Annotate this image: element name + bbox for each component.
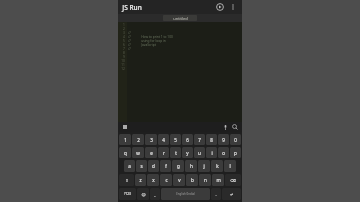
button[interactable]: Shift (119, 174, 134, 186)
staticText: c (165, 177, 168, 183)
button[interactable]: q (119, 147, 131, 158)
staticText: English (India) (176, 192, 195, 196)
staticText: 2 (123, 27, 125, 31)
staticText: g (177, 163, 180, 169)
staticText: 10 (121, 59, 125, 63)
staticText: 6 (123, 43, 125, 47)
button[interactable]: j (198, 160, 210, 172)
button[interactable]: Clipboard (121, 123, 129, 131)
staticText: i (211, 150, 213, 156)
staticText: ⇧ (125, 178, 129, 183)
button[interactable]: , (150, 188, 160, 200)
button[interactable]: i (206, 147, 217, 158)
button[interactable]: u (194, 147, 205, 158)
staticText: 9 (222, 137, 225, 143)
button[interactable]: Backspace (225, 174, 241, 186)
button[interactable]: 0 (230, 134, 241, 145)
staticText: // (128, 43, 131, 47)
button[interactable]: l (224, 160, 236, 172)
button[interactable]: 2 (132, 134, 144, 145)
button[interactable]: a (124, 160, 135, 172)
staticText: // (128, 39, 131, 43)
button[interactable]: 9 (218, 134, 229, 145)
button[interactable]: x (147, 174, 159, 186)
staticText: ⌫ (230, 178, 236, 183)
staticText: 5 (123, 39, 125, 43)
button[interactable]: h (185, 160, 197, 172)
staticText: o (222, 150, 225, 156)
button[interactable]: t (170, 147, 181, 158)
staticText: x (152, 177, 155, 183)
staticText: ?123 (124, 192, 131, 196)
staticText: , (154, 192, 156, 197)
staticText: h (190, 163, 193, 169)
staticText: 3 (123, 31, 125, 35)
staticText: // (128, 35, 131, 39)
staticText: m (216, 177, 221, 183)
button[interactable]: y (182, 147, 193, 158)
button[interactable]: . (211, 188, 221, 200)
staticText: JavaScript (141, 43, 156, 47)
staticText: 1 (124, 137, 127, 143)
staticText: 2 (137, 137, 140, 143)
staticText: w (136, 150, 140, 156)
staticText: v (178, 177, 181, 183)
button[interactable]: Search (231, 123, 239, 131)
button[interactable]: untitled (163, 15, 197, 21)
staticText: 8 (210, 137, 213, 143)
staticText: . (215, 192, 217, 197)
staticText: 12 (121, 67, 125, 71)
button[interactable]: v (173, 174, 185, 186)
button[interactable]: c (160, 174, 172, 186)
button[interactable]: o (218, 147, 229, 158)
button[interactable]: b (186, 174, 198, 186)
button[interactable]: Voice input (221, 123, 229, 131)
staticText: 4 (123, 35, 125, 39)
staticText: 0 (234, 137, 237, 143)
button[interactable]: ?123 (119, 188, 136, 200)
button[interactable]: f (160, 160, 171, 172)
staticText: 6 (186, 137, 189, 143)
staticText: f (165, 163, 167, 169)
button[interactable]: 4 (158, 134, 169, 145)
staticText: z (139, 177, 142, 183)
button[interactable]: g (172, 160, 184, 172)
button[interactable]: n (199, 174, 211, 186)
staticText: a (128, 163, 131, 169)
staticText: 8 (123, 51, 125, 55)
button[interactable]: s (136, 160, 147, 172)
staticText: 7 (123, 47, 125, 51)
staticText: ☺ (141, 192, 146, 197)
staticText: How to print 1 to 100 (141, 35, 173, 39)
button[interactable]: 6 (182, 134, 193, 145)
staticText: r (163, 150, 165, 156)
button[interactable]: More options (228, 2, 238, 12)
button[interactable]: 1 (119, 134, 131, 145)
staticText: d (152, 163, 155, 169)
button[interactable]: ☺ (137, 188, 149, 200)
staticText: t (175, 150, 177, 156)
button[interactable]: p (230, 147, 241, 158)
staticText: s (140, 163, 143, 169)
staticText: 5 (174, 137, 177, 143)
staticText: 1 (123, 23, 125, 27)
button[interactable]: Space (161, 188, 210, 200)
button[interactable]: 8 (206, 134, 217, 145)
button[interactable]: 3 (145, 134, 157, 145)
button[interactable]: Run (214, 1, 226, 13)
button[interactable]: r (158, 147, 169, 158)
staticText: 11 (121, 63, 125, 67)
button[interactable]: w (132, 147, 144, 158)
staticText: 9 (123, 55, 125, 59)
button[interactable]: k (211, 160, 223, 172)
button[interactable]: e (145, 147, 157, 158)
button[interactable]: 5 (170, 134, 181, 145)
button[interactable]: ↵ (222, 188, 241, 200)
button[interactable]: 7 (194, 134, 205, 145)
staticText: j (203, 163, 205, 169)
button[interactable]: d (148, 160, 159, 172)
button[interactable]: m (212, 174, 224, 186)
staticText: 3 (150, 137, 153, 143)
staticText: b (191, 177, 194, 183)
button[interactable]: z (135, 174, 146, 186)
